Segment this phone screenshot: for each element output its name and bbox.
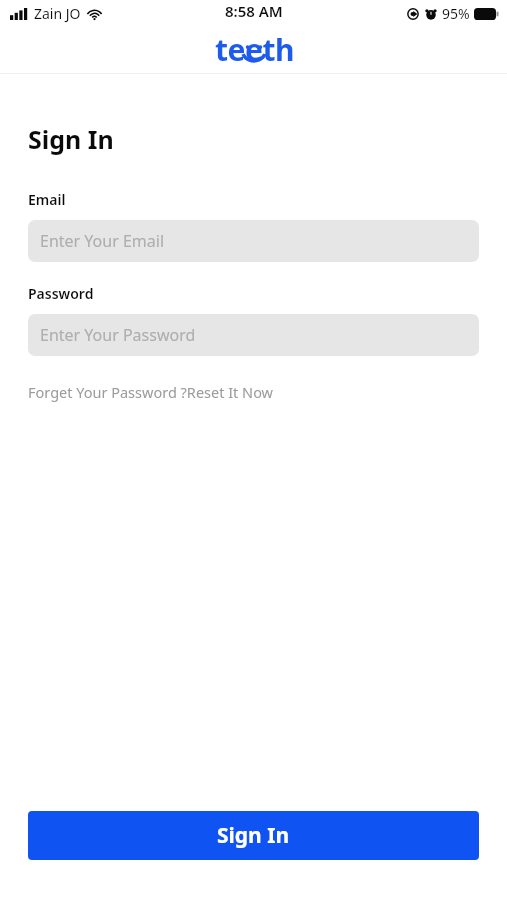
staticText: Forget Your Password ?Reset It Now: [28, 382, 274, 402]
staticText: 95%: [442, 4, 470, 23]
staticText: Enter Your Password: [40, 324, 196, 346]
staticText: Zain JO: [34, 4, 81, 23]
staticText: Password: [28, 284, 94, 303]
button[interactable]: Enter Your Email: [28, 220, 479, 262]
staticText: 8:58 AM: [225, 1, 283, 21]
button[interactable]: Sign In: [28, 811, 479, 860]
staticText: Sign In: [217, 821, 290, 850]
staticText: Email: [28, 190, 66, 209]
staticText: Sign In: [28, 122, 114, 156]
staticText: teeth: [215, 29, 294, 70]
button[interactable]: Enter Your Password: [28, 314, 479, 356]
button[interactable]: Forget Your Password ?Reset It Now: [28, 382, 274, 402]
staticText: Enter Your Email: [40, 230, 165, 252]
